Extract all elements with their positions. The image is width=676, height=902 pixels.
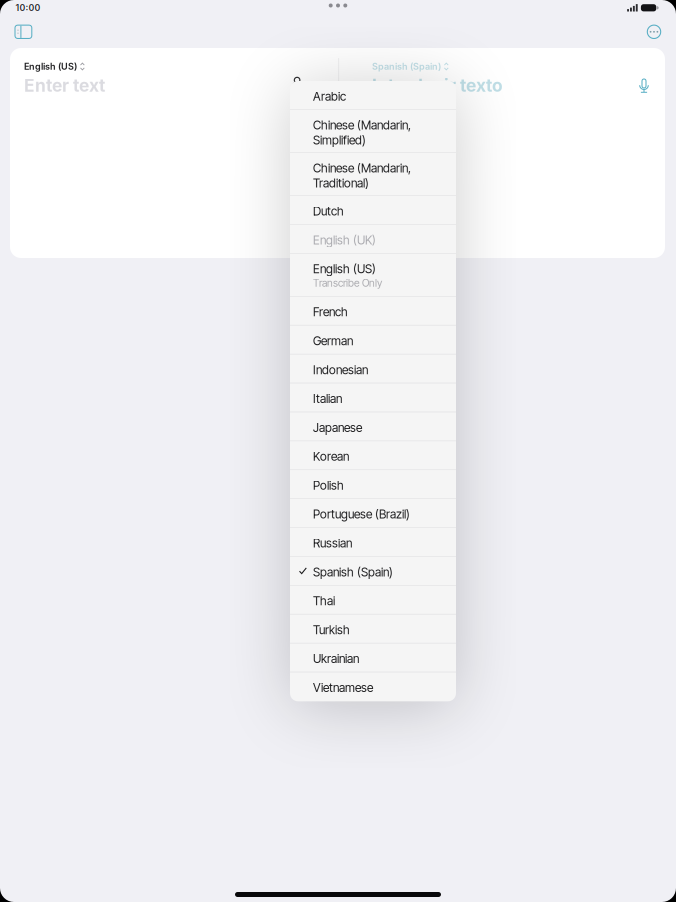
staticText: English (US)	[24, 61, 77, 72]
staticText: Vietnamese	[313, 680, 373, 695]
staticText: Chinese (Mandarin,	[313, 118, 411, 132]
button[interactable]: Portuguese (Brazil)	[290, 499, 456, 528]
button[interactable]: Dictate	[634, 73, 654, 98]
button[interactable]: Vietnamese	[290, 672, 456, 701]
button[interactable]: Dutch	[290, 196, 456, 225]
staticText: 10:00	[15, 2, 40, 13]
staticText: Spanish (Spain)	[372, 61, 441, 72]
button[interactable]: Turkish	[290, 615, 456, 643]
button[interactable]: German	[290, 326, 456, 354]
staticText: Introducir texto	[372, 75, 503, 96]
staticText: Arabic	[313, 89, 346, 103]
button[interactable]: Russian	[290, 528, 456, 557]
staticText: Simplified)	[313, 133, 366, 147]
button[interactable]: English (US)	[24, 61, 85, 72]
staticText: Korean	[313, 449, 349, 464]
staticText: Italian	[313, 391, 342, 406]
button[interactable]: Korean	[290, 441, 456, 470]
staticText: Enter text	[24, 75, 105, 96]
staticText: English (UK)	[313, 233, 376, 247]
staticText: Spanish (Spain)	[313, 565, 393, 579]
staticText: Turkish	[313, 623, 350, 637]
staticText: English (US)	[313, 262, 376, 276]
staticText: Polish	[313, 478, 344, 493]
staticText: German	[313, 334, 353, 348]
button[interactable]: English (US)	[290, 254, 456, 297]
staticText: Portuguese (Brazil)	[313, 507, 410, 521]
staticText: Transcribe Only	[313, 277, 382, 289]
button[interactable]: Japanese	[290, 412, 456, 441]
button[interactable]: Thai	[290, 586, 456, 615]
staticText: Japanese	[313, 420, 362, 435]
staticText: Chinese (Mandarin,	[313, 161, 411, 175]
button[interactable]: Italian	[290, 383, 456, 412]
button[interactable]: Indonesian	[290, 354, 456, 383]
staticText: Russian	[313, 536, 352, 550]
button[interactable]: Polish	[290, 470, 456, 499]
button[interactable]: Chinese (Mandarin,	[290, 110, 456, 153]
staticText: Traditional)	[313, 176, 369, 190]
button[interactable]: Spanish (Spain)	[372, 61, 449, 72]
staticText: Dutch	[313, 204, 344, 218]
staticText: Ukrainian	[313, 651, 359, 666]
button[interactable]: Spanish (Spain)	[290, 557, 456, 586]
button[interactable]: French	[290, 297, 456, 326]
button[interactable]: English (UK)	[290, 225, 456, 254]
button[interactable]: Ukrainian	[290, 643, 456, 672]
button[interactable]: Arabic	[290, 81, 456, 110]
staticText: Indonesian	[313, 362, 368, 377]
button[interactable]: Toggle Sidebar	[10, 20, 37, 43]
button[interactable]: More	[642, 20, 666, 44]
staticText: Thai	[313, 594, 335, 608]
button[interactable]: Chinese (Mandarin,	[290, 153, 456, 196]
staticText: French	[313, 305, 348, 319]
